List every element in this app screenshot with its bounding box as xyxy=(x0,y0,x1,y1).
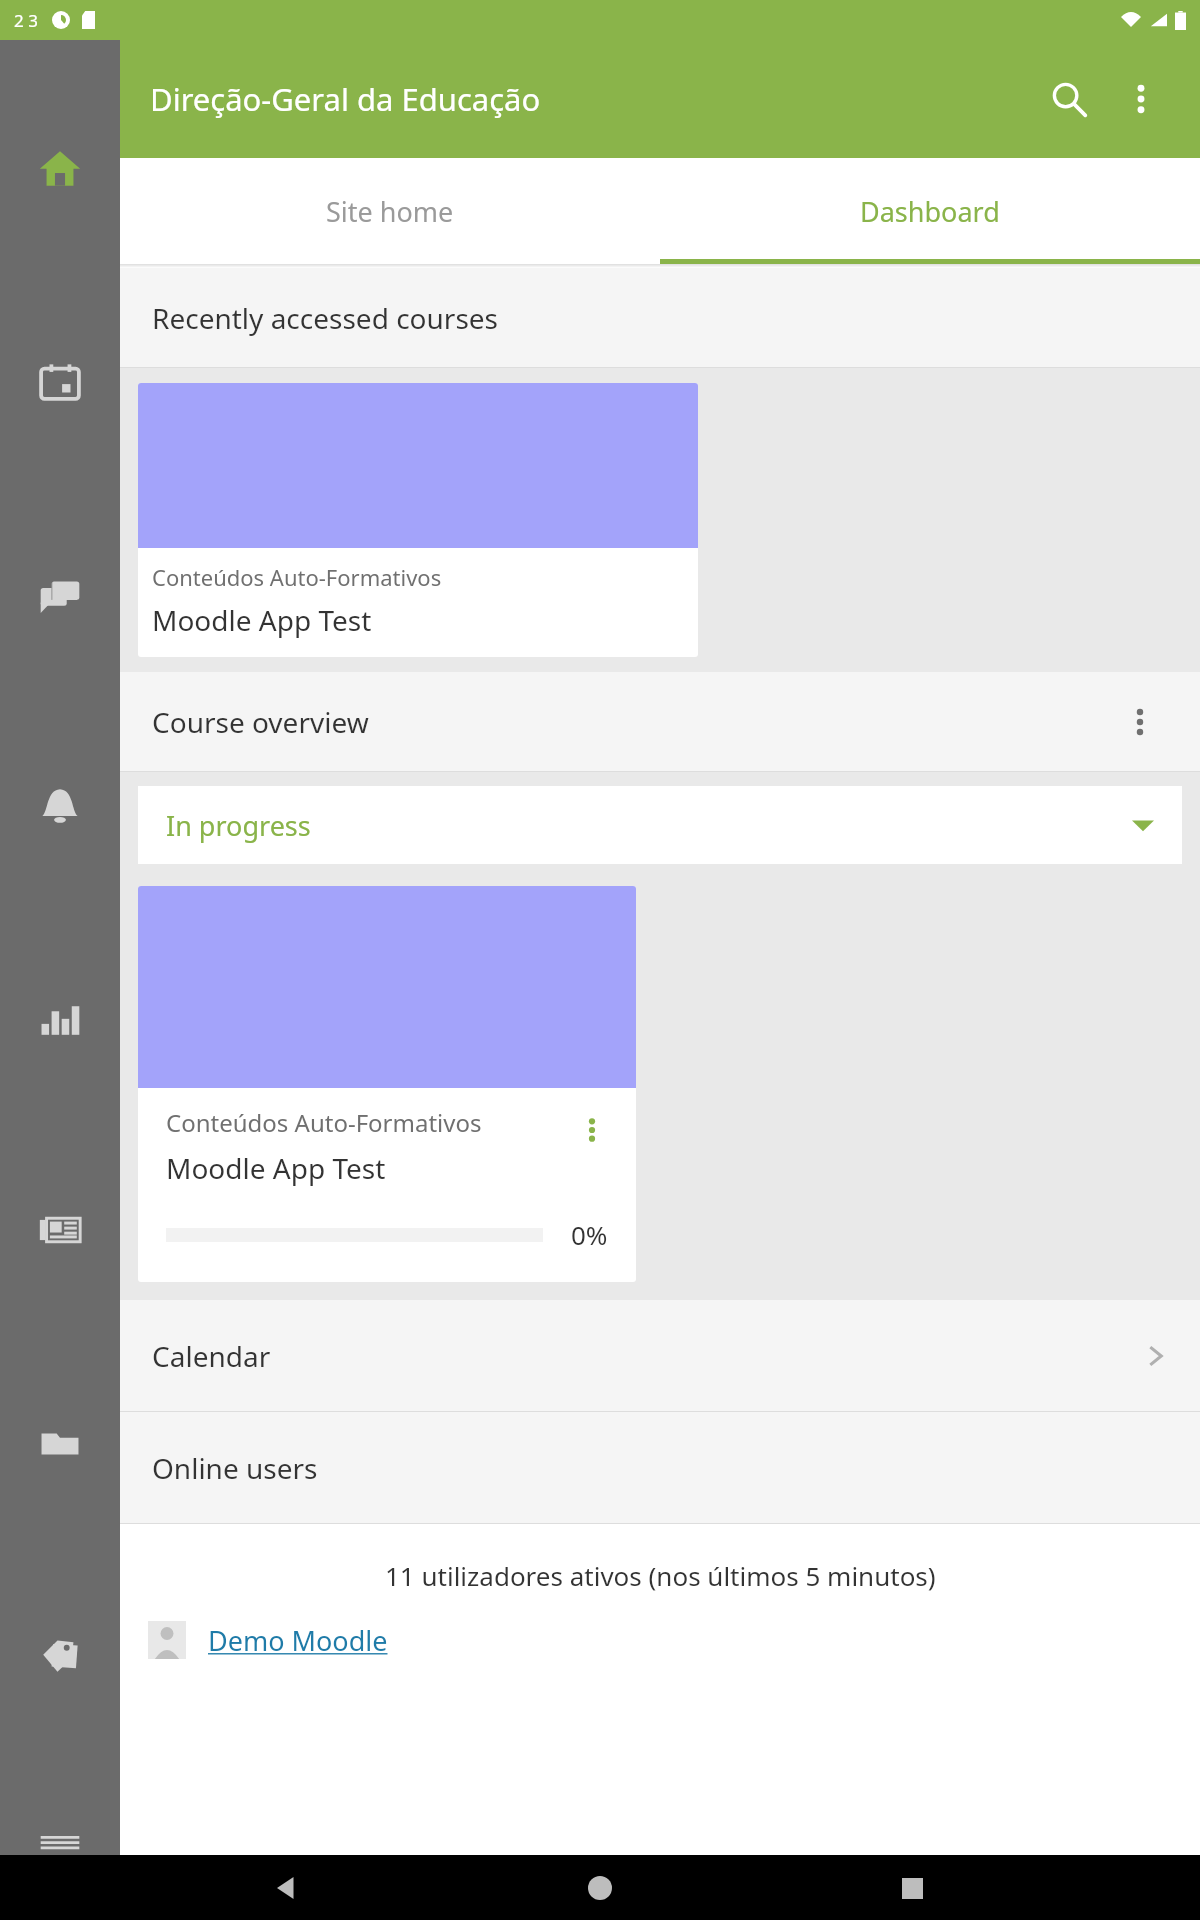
staticText: 0% xyxy=(571,1217,608,1252)
staticText: Conteúdos Auto-Formativos xyxy=(166,1106,482,1139)
button[interactable]: Back xyxy=(264,1864,312,1912)
button[interactable]: More xyxy=(24,1830,96,1855)
button[interactable]: Conteúdos Auto-Formativos xyxy=(138,383,698,657)
button[interactable]: Dashboard xyxy=(660,158,1200,264)
button[interactable]: Site home xyxy=(120,158,660,264)
button[interactable]: Messages xyxy=(24,558,96,630)
button[interactable]: Course menu xyxy=(568,1106,616,1154)
button[interactable]: Calendar xyxy=(120,1300,1200,1412)
staticText: Dashboard xyxy=(860,193,1000,230)
staticText: Recently accessed courses xyxy=(152,299,498,337)
button[interactable]: Demo Moodle xyxy=(148,1621,1200,1659)
staticText: Moodle App Test xyxy=(166,1149,386,1187)
button[interactable]: Search xyxy=(1038,68,1100,130)
button[interactable]: More options xyxy=(1112,70,1170,128)
staticText: 11 utilizadores ativos (nos últimos 5 mi… xyxy=(385,1558,936,1593)
button[interactable]: Online users xyxy=(120,1412,1200,1524)
button[interactable]: In progress xyxy=(138,786,1182,864)
button[interactable]: Files xyxy=(24,1406,96,1478)
button[interactable]: Grades xyxy=(24,982,96,1054)
button[interactable]: Home xyxy=(24,132,96,204)
staticText: Online users xyxy=(152,1449,318,1487)
staticText: Moodle App Test xyxy=(152,601,372,639)
button[interactable]: Tags xyxy=(24,1618,96,1690)
staticText: 2 3 xyxy=(14,9,38,32)
button[interactable]: Section menu xyxy=(1112,694,1168,750)
button[interactable]: News xyxy=(24,1194,96,1266)
staticText: In progress xyxy=(166,807,311,844)
button[interactable]: Conteúdos Auto-Formativos xyxy=(138,886,636,1282)
staticText: Calendar xyxy=(152,1337,271,1375)
staticText: Conteúdos Auto-Formativos xyxy=(152,562,442,592)
staticText: Site home xyxy=(326,193,454,230)
button[interactable]: Notifications xyxy=(24,770,96,842)
staticText: Course overview xyxy=(152,703,369,741)
staticText: Direção-Geral da Educação xyxy=(150,78,541,120)
button[interactable]: Home xyxy=(576,1864,624,1912)
staticText: Demo Moodle xyxy=(208,1622,388,1659)
button[interactable]: Recents xyxy=(888,1864,936,1912)
button[interactable]: Calendar xyxy=(24,346,96,418)
